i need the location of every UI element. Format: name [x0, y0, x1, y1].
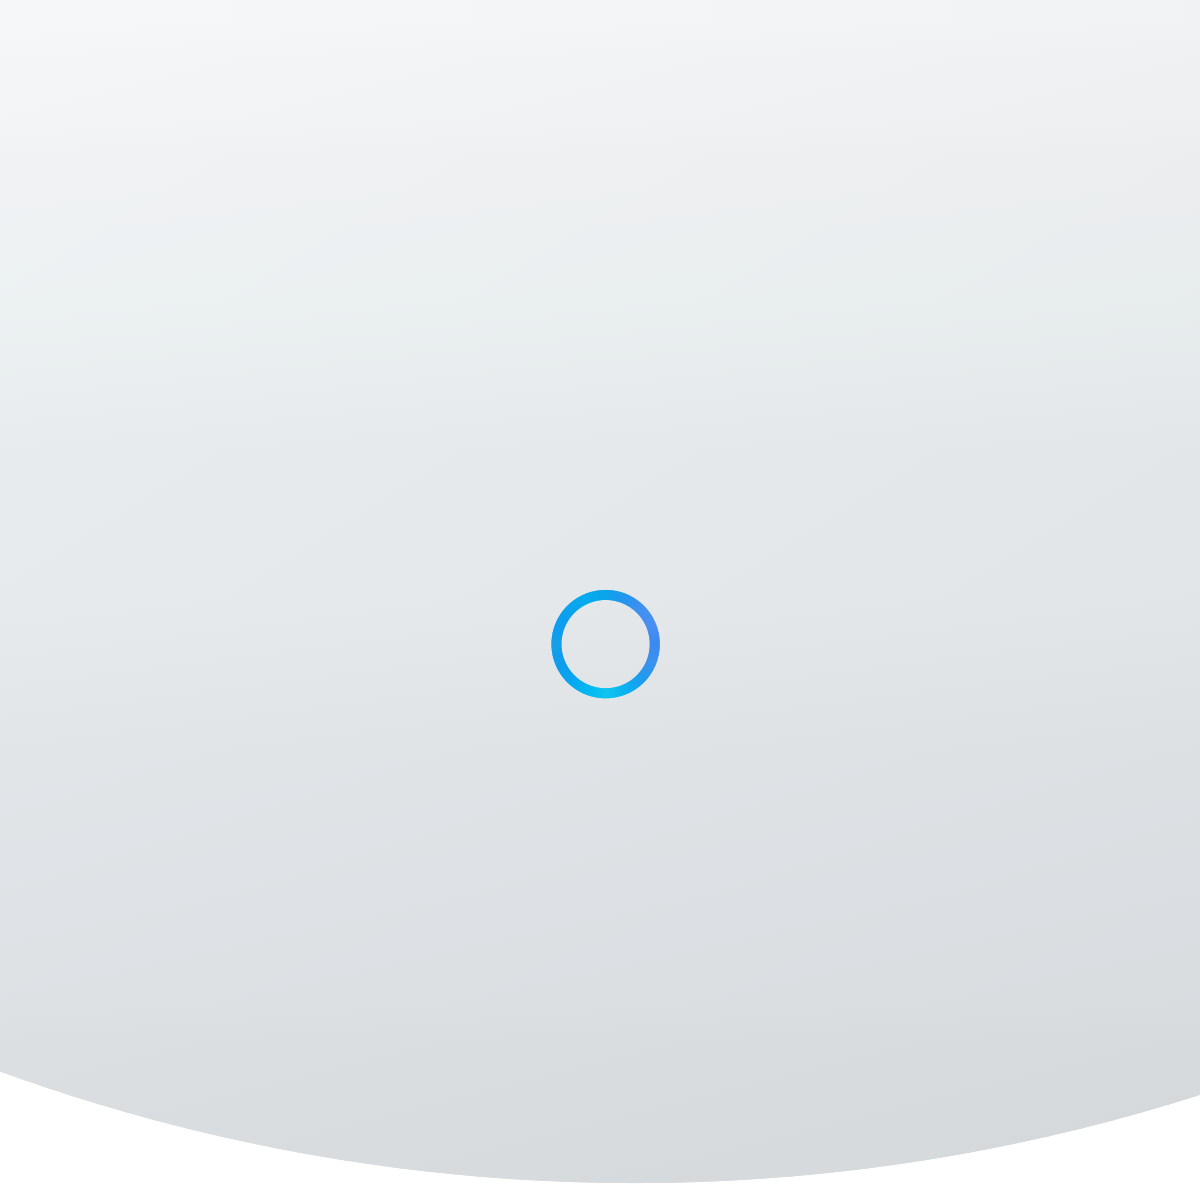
button[interactable]: Loading	[551, 590, 660, 698]
